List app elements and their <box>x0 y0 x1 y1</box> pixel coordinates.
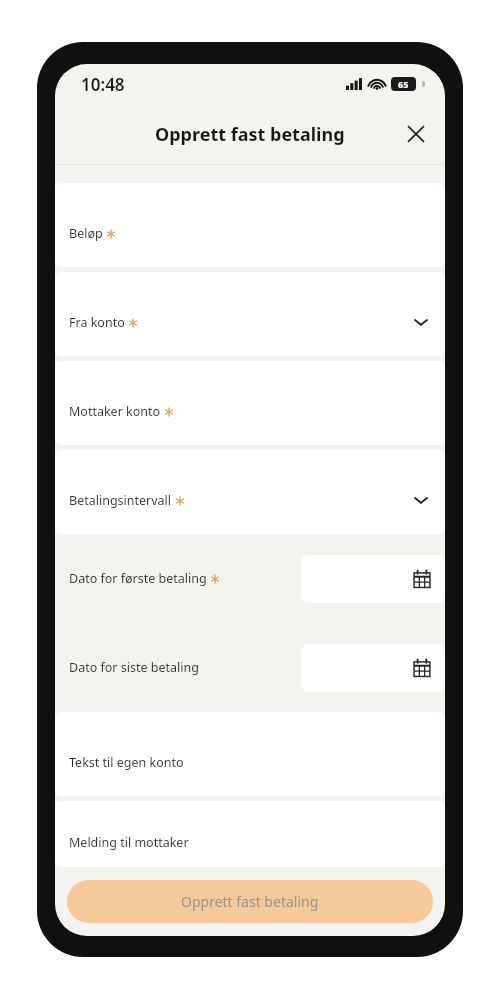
button[interactable]: Opprett fast betaling <box>67 880 433 923</box>
button[interactable]: Tekst til egen konto <box>55 712 445 796</box>
button[interactable]: Fra konto <box>55 272 445 356</box>
staticText: Dato for første betaling <box>69 570 207 587</box>
staticText: Opprett fast betaling <box>155 122 345 147</box>
staticText: Beløp <box>69 225 103 242</box>
button[interactable]: Beløp <box>55 183 445 267</box>
staticText: Melding til mottaker <box>69 834 189 851</box>
button[interactable]: Melding til mottaker <box>55 801 445 867</box>
button[interactable]: Betalingsintervall <box>55 450 445 534</box>
staticText: Tekst til egen konto <box>69 754 184 771</box>
button[interactable]: Mottaker konto <box>55 361 445 445</box>
button[interactable]: Pick date <box>301 644 445 692</box>
staticText: 10:48 <box>81 73 125 96</box>
button[interactable]: Pick date <box>301 555 445 603</box>
staticText: Fra konto <box>69 314 125 331</box>
staticText: 65 <box>398 78 409 90</box>
staticText: Mottaker konto <box>69 403 161 420</box>
staticText: Dato for siste betaling <box>69 659 199 676</box>
staticText: Opprett fast betaling <box>181 892 319 911</box>
staticText: Betalingsintervall <box>69 492 172 509</box>
button[interactable]: Close <box>401 119 431 149</box>
